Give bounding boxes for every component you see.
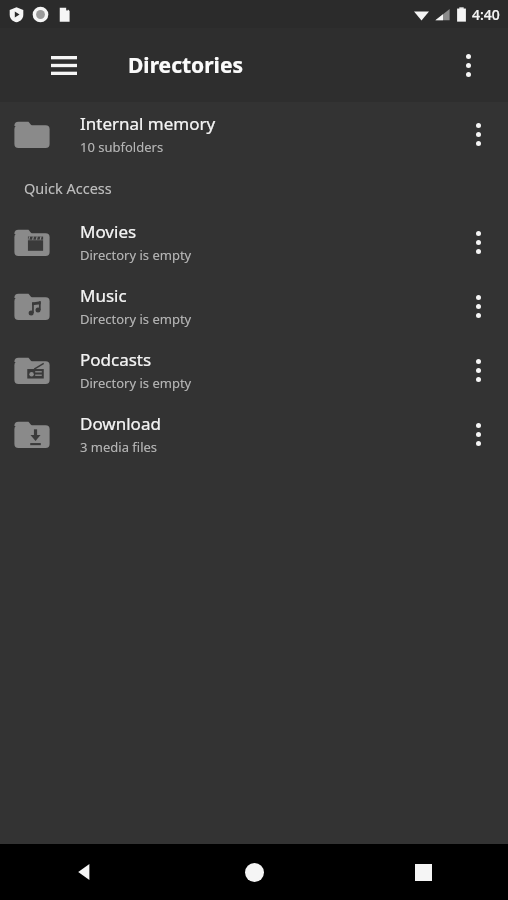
button[interactable]: More options for Music <box>452 274 504 338</box>
staticText: Internal memory <box>80 112 216 135</box>
staticText: Directory is empty <box>80 246 192 264</box>
button[interactable]: Recent apps <box>339 844 508 900</box>
button[interactable]: Open navigation menu <box>44 45 84 85</box>
button[interactable]: Music <box>0 274 508 338</box>
button[interactable]: Download <box>0 402 508 466</box>
button[interactable]: Home <box>170 844 339 900</box>
button[interactable]: Internal memory <box>0 102 508 166</box>
button[interactable]: More options for Download <box>452 402 504 466</box>
button[interactable]: More options for Internal memory <box>452 102 504 166</box>
staticText: Quick Access <box>24 178 112 198</box>
button[interactable]: Movies <box>0 210 508 274</box>
staticText: Podcasts <box>80 348 152 371</box>
button[interactable]: Back <box>0 844 170 900</box>
button[interactable]: More options <box>450 47 486 83</box>
staticText: 4:40 <box>472 5 500 24</box>
staticText: Movies <box>80 220 137 243</box>
staticText: Directories <box>128 51 243 80</box>
button[interactable]: More options for Podcasts <box>452 338 504 402</box>
staticText: 10 subfolders <box>80 138 164 156</box>
staticText: Directory is empty <box>80 310 192 328</box>
staticText: Directory is empty <box>80 374 192 392</box>
staticText: Download <box>80 412 161 435</box>
staticText: 3 media files <box>80 438 158 456</box>
button[interactable]: More options for Movies <box>452 210 504 274</box>
button[interactable]: Podcasts <box>0 338 508 402</box>
staticText: Music <box>80 284 127 307</box>
